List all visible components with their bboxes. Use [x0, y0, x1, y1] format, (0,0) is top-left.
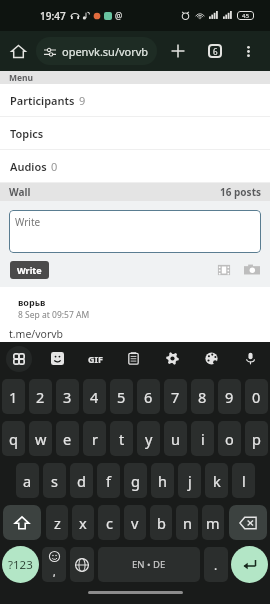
button[interactable]: Enter — [231, 546, 268, 583]
button[interactable]: t — [110, 421, 133, 456]
button[interactable]: New tab — [164, 37, 192, 65]
staticText: h — [158, 471, 167, 491]
staticText: s — [51, 471, 58, 491]
button[interactable]: v — [124, 505, 146, 540]
staticText: EN • DE — [132, 558, 166, 571]
staticText: p — [252, 429, 261, 449]
staticText: i — [201, 429, 205, 449]
staticText: y — [145, 429, 153, 449]
staticText: @ — [115, 10, 123, 21]
button[interactable]: q — [2, 421, 25, 456]
staticText: t — [119, 429, 125, 449]
staticText: c — [106, 513, 113, 533]
button[interactable]: Audios — [0, 150, 270, 182]
button[interactable]: l — [232, 463, 255, 498]
button[interactable]: Participants — [0, 84, 270, 116]
button[interactable]: e — [56, 421, 79, 456]
button[interactable]: 5 — [110, 379, 133, 414]
staticText: Participants — [10, 93, 75, 108]
staticText: 4 — [90, 387, 99, 407]
button[interactable]: 0 — [245, 379, 268, 414]
button[interactable]: 9 — [218, 379, 241, 414]
button[interactable]: 4 — [83, 379, 106, 414]
button[interactable]: Emoji — [42, 547, 66, 582]
button[interactable]: Attach photo — [244, 262, 260, 278]
button[interactable]: n — [176, 505, 198, 540]
button[interactable]: j — [178, 463, 201, 498]
button[interactable]: Write — [9, 210, 261, 253]
button[interactable]: b — [150, 505, 172, 540]
button[interactable]: openvk.su/vorvb — [36, 37, 157, 65]
button[interactable]: 6 — [137, 379, 160, 414]
button[interactable]: 1 — [2, 379, 25, 414]
staticText: n — [183, 513, 192, 533]
staticText: ?123 — [8, 557, 33, 573]
button[interactable]: GIF — [76, 342, 114, 375]
staticText: m — [206, 513, 220, 533]
staticText: t.me/vorvb — [9, 327, 64, 341]
button[interactable]: Home — [0, 33, 36, 69]
staticText: k — [213, 471, 221, 491]
button[interactable]: h — [151, 463, 174, 498]
button[interactable]: 3 — [56, 379, 79, 414]
button[interactable]: Voice input — [231, 342, 270, 375]
button[interactable]: 7 — [164, 379, 187, 414]
button[interactable]: More options — [234, 37, 262, 65]
staticText: z — [54, 513, 61, 533]
staticText: Write — [15, 215, 41, 229]
button[interactable]: Apps — [0, 342, 38, 375]
button[interactable]: . — [204, 547, 228, 582]
button[interactable]: Tabs — [201, 37, 229, 65]
button[interactable]: c — [98, 505, 120, 540]
staticText: 7 — [171, 387, 180, 407]
staticText: j — [188, 471, 192, 491]
button[interactable]: Clipboard — [114, 342, 153, 375]
staticText: , — [53, 565, 56, 579]
button[interactable]: w — [29, 421, 52, 456]
staticText: d — [77, 471, 86, 491]
button[interactable]: r — [83, 421, 106, 456]
button[interactable]: Stickers — [38, 342, 76, 375]
staticText: GIF — [88, 353, 103, 365]
button[interactable]: y — [137, 421, 160, 456]
staticText: r — [92, 429, 98, 449]
button[interactable]: ?123 — [2, 546, 39, 583]
button[interactable]: Write — [10, 261, 49, 279]
button[interactable]: Backspace — [229, 505, 267, 540]
button[interactable]: Switch language — [70, 547, 94, 582]
staticText: 0 — [252, 387, 261, 407]
staticText: 5 — [117, 387, 126, 407]
button[interactable]: s — [43, 463, 66, 498]
button[interactable]: f — [97, 463, 120, 498]
button[interactable]: Theme — [192, 342, 231, 375]
staticText: o — [225, 429, 234, 449]
staticText: a — [23, 471, 32, 491]
button[interactable]: Shift — [3, 505, 41, 540]
staticText: 0 — [51, 159, 58, 174]
button[interactable]: m — [202, 505, 224, 540]
button[interactable]: Settings — [153, 342, 192, 375]
staticText: Audios — [10, 159, 47, 174]
staticText: 9 — [79, 93, 86, 108]
staticText: openvk.su/vorvb — [62, 44, 149, 59]
button[interactable]: g — [124, 463, 147, 498]
button[interactable]: EN • DE — [98, 547, 200, 582]
staticText: w — [35, 429, 47, 449]
button[interactable]: Topics — [0, 117, 270, 149]
staticText: e — [63, 429, 72, 449]
staticText: u — [171, 429, 180, 449]
staticText: q — [9, 429, 18, 449]
button[interactable]: k — [205, 463, 228, 498]
staticText: 1 — [9, 387, 18, 407]
button[interactable]: u — [164, 421, 187, 456]
button[interactable]: 8 — [191, 379, 214, 414]
button[interactable]: o — [218, 421, 241, 456]
button[interactable]: z — [46, 505, 68, 540]
button[interactable]: d — [70, 463, 93, 498]
button[interactable]: p — [245, 421, 268, 456]
button[interactable]: x — [72, 505, 94, 540]
button[interactable]: i — [191, 421, 214, 456]
button[interactable]: Attach video — [216, 262, 232, 278]
button[interactable]: a — [16, 463, 39, 498]
button[interactable]: 2 — [29, 379, 52, 414]
